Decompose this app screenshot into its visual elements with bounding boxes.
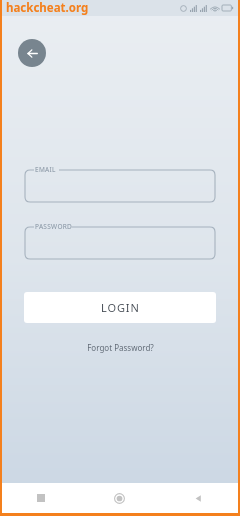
button[interactable]: PASSWORD — [24, 220, 216, 260]
staticText: PASSWORD — [35, 222, 73, 231]
button[interactable]: Back — [159, 483, 238, 513]
staticText: LOGIN — [101, 300, 140, 315]
staticText: EMAIL — [35, 165, 56, 174]
button[interactable]: Forgot Password? — [81, 339, 160, 356]
button[interactable]: Home — [80, 483, 159, 513]
button[interactable]: Recents — [2, 483, 80, 513]
button[interactable]: LOGIN — [24, 292, 216, 323]
button[interactable]: Back — [18, 39, 46, 67]
button[interactable]: EMAIL — [24, 163, 216, 203]
staticText: hackcheat.org — [6, 0, 89, 16]
